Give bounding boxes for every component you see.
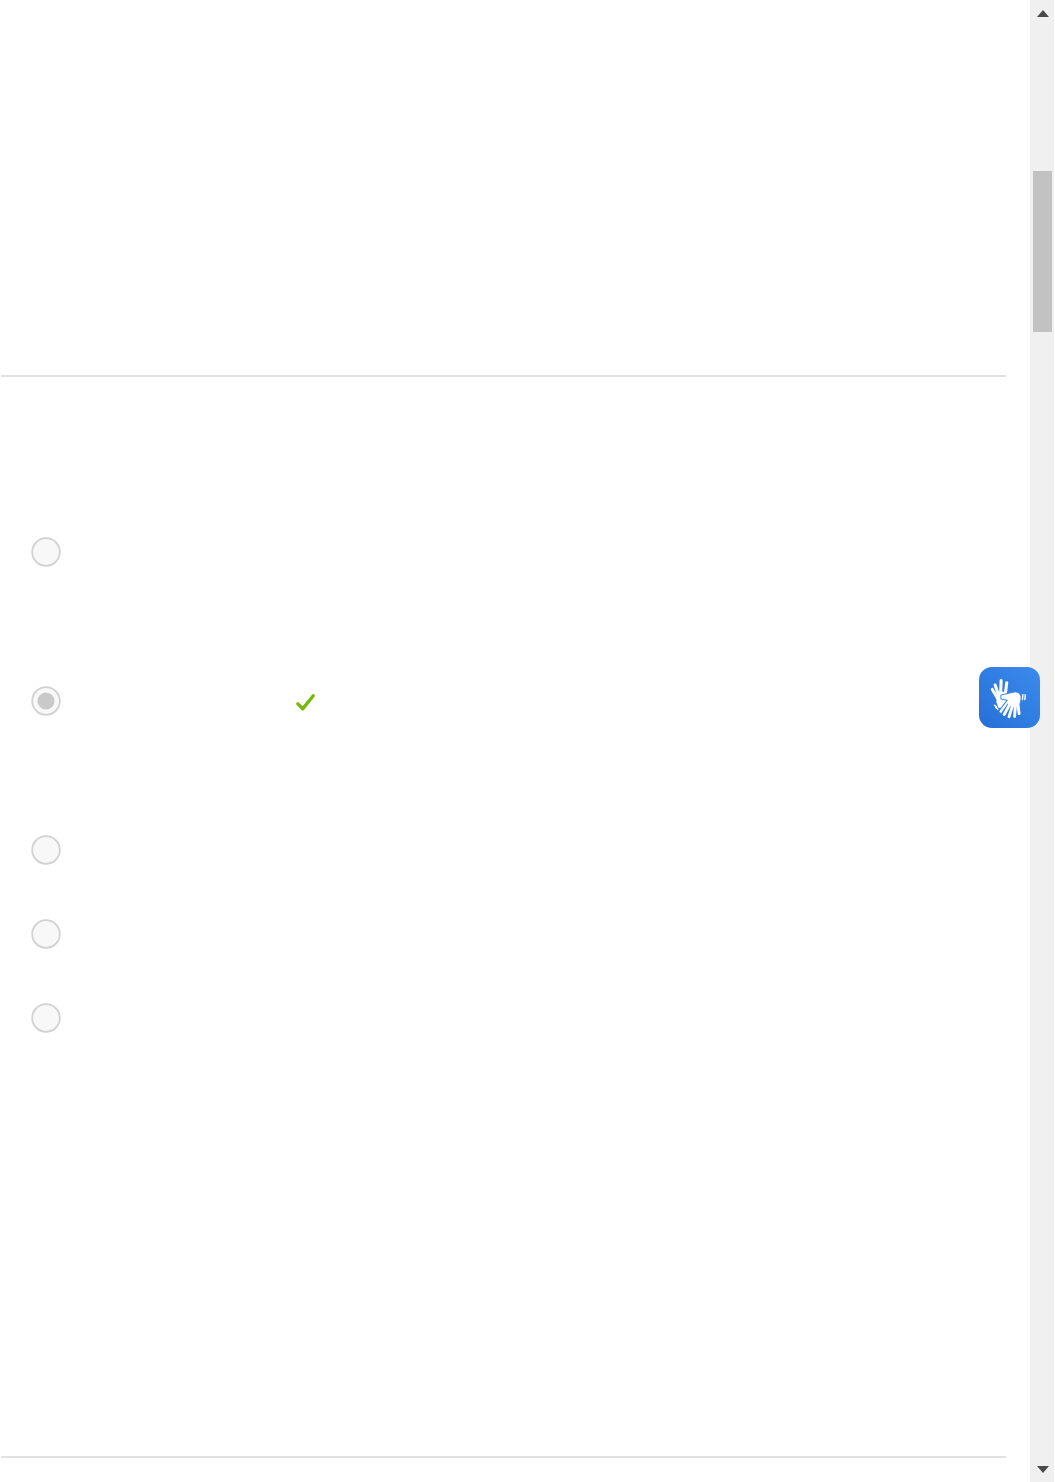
button[interactable]: Selected option [31,686,61,716]
button[interactable]: Option [31,919,61,949]
button[interactable]: Option [31,835,61,865]
button[interactable]: Scroll up [1030,0,1054,24]
button[interactable]: Sign language [979,667,1040,728]
button[interactable]: Option [31,1003,61,1033]
button[interactable]: Option [31,537,61,567]
button[interactable]: Scroll down [1030,1458,1054,1482]
